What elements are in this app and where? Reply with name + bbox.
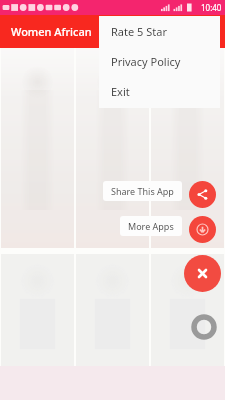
staticText: Privacy Policy (111, 54, 181, 69)
button[interactable]: Exit (99, 76, 220, 106)
button[interactable]: Share This App (103, 181, 182, 201)
staticText: 10:40 (201, 2, 222, 13)
button[interactable]: More Apps (189, 216, 216, 243)
button[interactable]: More Apps (120, 216, 182, 236)
staticText: Exit (111, 84, 130, 99)
button[interactable]: Share This App (189, 181, 216, 208)
staticText: Women African (11, 24, 92, 39)
staticText: Rate 5 Star (111, 24, 167, 39)
staticText: Share This App (111, 185, 174, 197)
button[interactable]: Privacy Policy (99, 46, 220, 76)
button[interactable]: Rate 5 Star (99, 16, 220, 46)
staticText: More Apps (128, 220, 174, 232)
button[interactable]: Close menu (184, 255, 221, 292)
